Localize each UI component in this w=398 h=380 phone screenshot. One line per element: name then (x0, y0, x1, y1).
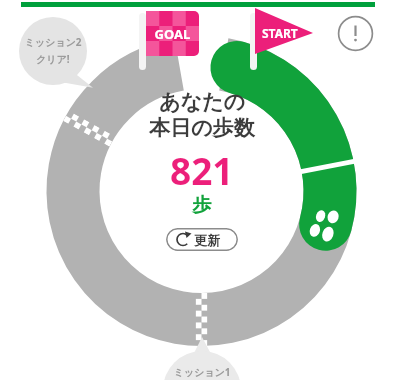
button[interactable]: Information (337, 15, 374, 52)
button[interactable] (166, 228, 238, 251)
button[interactable] (163, 344, 241, 380)
button[interactable] (13, 17, 93, 85)
